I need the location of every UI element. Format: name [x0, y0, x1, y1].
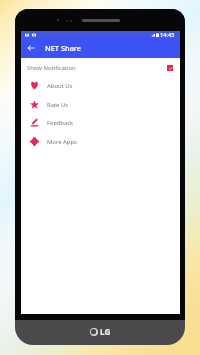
button[interactable]: Feedback	[21, 113, 180, 132]
staticText: Show Notification	[27, 64, 76, 72]
staticText: More Apps	[47, 138, 77, 146]
button[interactable]: Show Notification	[21, 58, 180, 78]
button[interactable]: Back	[21, 38, 40, 58]
button[interactable]: About Us	[21, 76, 180, 95]
staticText: 14:43	[160, 31, 175, 38]
button[interactable]: Rate Us	[21, 95, 180, 114]
button[interactable]: More Apps	[21, 132, 180, 151]
staticText: Feedback	[47, 119, 74, 127]
staticText: LG	[100, 326, 111, 337]
staticText: Rate Us	[47, 101, 69, 109]
staticText: NET Share	[45, 43, 82, 53]
staticText: About Us	[47, 82, 73, 90]
